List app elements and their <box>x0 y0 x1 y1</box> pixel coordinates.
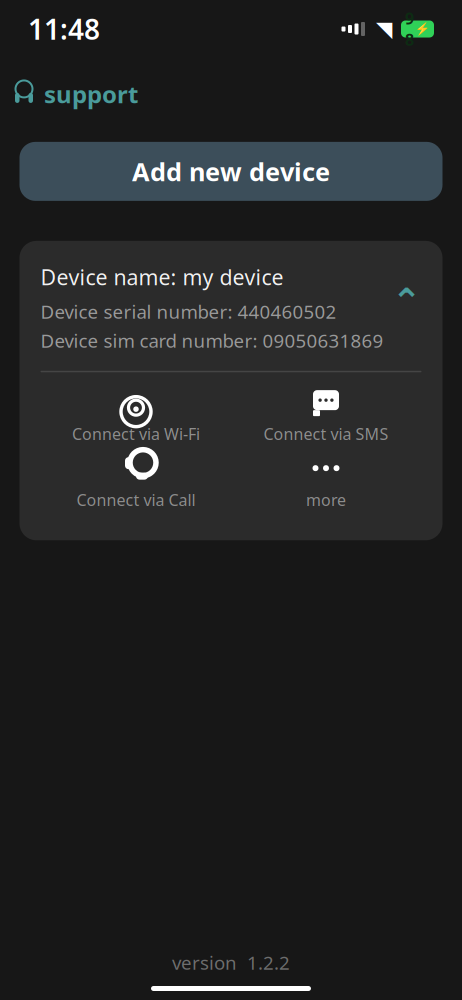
staticText: Connect via Wi-Fi <box>72 423 200 444</box>
button[interactable]: support <box>2 72 150 116</box>
staticText: Device name: my device <box>40 263 283 291</box>
button[interactable]: Connect via Call <box>41 450 231 516</box>
staticText: ⌃ <box>391 281 421 322</box>
staticText: Add new device <box>132 155 330 188</box>
staticText: version 1.2.2 <box>172 950 290 975</box>
button[interactable]: Device name: my device <box>19 241 442 371</box>
button[interactable]: Connect via Wi-Fi <box>41 384 231 450</box>
button[interactable]: Add new device <box>19 142 442 201</box>
staticText: support <box>44 78 138 110</box>
button[interactable]: Connect via SMS <box>231 384 421 450</box>
staticText: Connect via Call <box>76 489 195 510</box>
staticText: Device sim card number: 09050631869 <box>40 328 383 353</box>
staticText: ⚡ <box>415 22 430 36</box>
staticText: more <box>306 489 346 510</box>
staticText: 11:48 <box>28 10 100 48</box>
staticText: Connect via SMS <box>263 423 388 444</box>
button[interactable]: more <box>231 450 421 516</box>
staticText: 98 <box>405 8 414 50</box>
staticText: Device serial number: 440460502 <box>40 299 336 324</box>
staticText: ◥ <box>376 17 392 41</box>
